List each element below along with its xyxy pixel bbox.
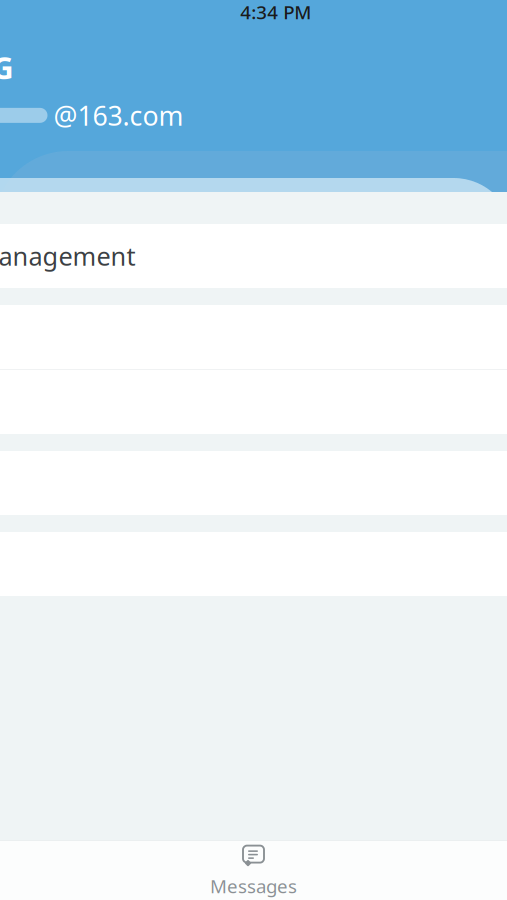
button[interactable]: Messages [103, 841, 403, 900]
staticText: Messages [210, 874, 297, 898]
staticText: 4:34 PM [240, 0, 311, 24]
button[interactable]: Family Management [0, 224, 507, 288]
staticText: GG [0, 47, 13, 88]
staticText: Family Management [0, 239, 135, 273]
staticText: @163.com [53, 98, 183, 133]
